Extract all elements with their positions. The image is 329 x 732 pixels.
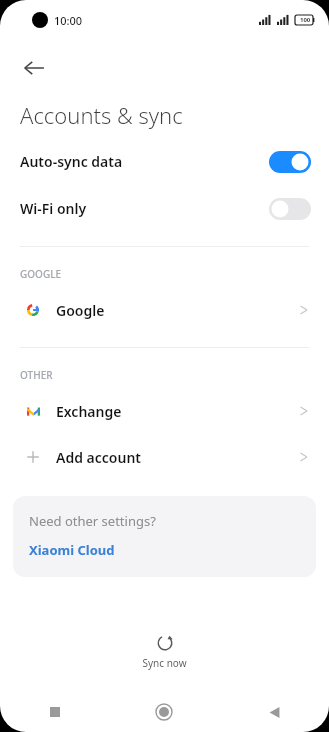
staticText: GOOGLE [20, 267, 62, 281]
staticText: Wi-Fi only [20, 199, 87, 218]
button[interactable]: Need other settings? [13, 496, 316, 577]
button[interactable]: Back [219, 692, 329, 732]
staticText: Sync now [142, 656, 187, 670]
staticText: Add account [56, 448, 142, 467]
staticText: Xiaomi Cloud [29, 541, 115, 559]
button[interactable]: Back [12, 46, 56, 90]
button[interactable]: Recents [0, 692, 109, 732]
staticText: OTHER [20, 368, 53, 382]
button[interactable]: Exchange [0, 388, 329, 434]
staticText: Need other settings? [29, 512, 156, 530]
staticText: Accounts & sync [20, 100, 183, 130]
button[interactable]: Sync now [0, 631, 329, 674]
staticText: Google [56, 301, 105, 320]
button[interactable]: Add account [0, 434, 329, 480]
button[interactable]: Google [0, 287, 329, 333]
staticText: 100 [300, 16, 311, 24]
staticText: Auto-sync data [20, 152, 123, 171]
staticText: 10:00 [54, 13, 83, 28]
staticText: Exchange [56, 402, 122, 421]
button[interactable]: Wi-Fi only [0, 185, 329, 232]
button[interactable]: Auto-sync data [0, 138, 329, 185]
button[interactable]: Home [109, 692, 219, 732]
